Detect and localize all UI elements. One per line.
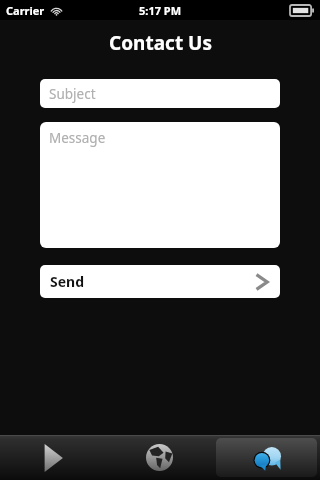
staticText: Send <box>50 272 85 291</box>
button[interactable]: Web <box>109 438 210 477</box>
button[interactable]: Send <box>40 265 280 298</box>
button[interactable]: Contact Us <box>216 438 317 477</box>
button[interactable]: Message <box>40 122 280 248</box>
staticText: Contact Us <box>109 30 212 56</box>
button[interactable]: Play <box>3 438 103 477</box>
staticText: 5:17 PM <box>139 3 182 18</box>
button[interactable]: Subject <box>40 79 280 108</box>
staticText: Message <box>49 129 106 147</box>
staticText: Subject <box>49 85 96 103</box>
staticText: Carrier <box>6 3 45 18</box>
